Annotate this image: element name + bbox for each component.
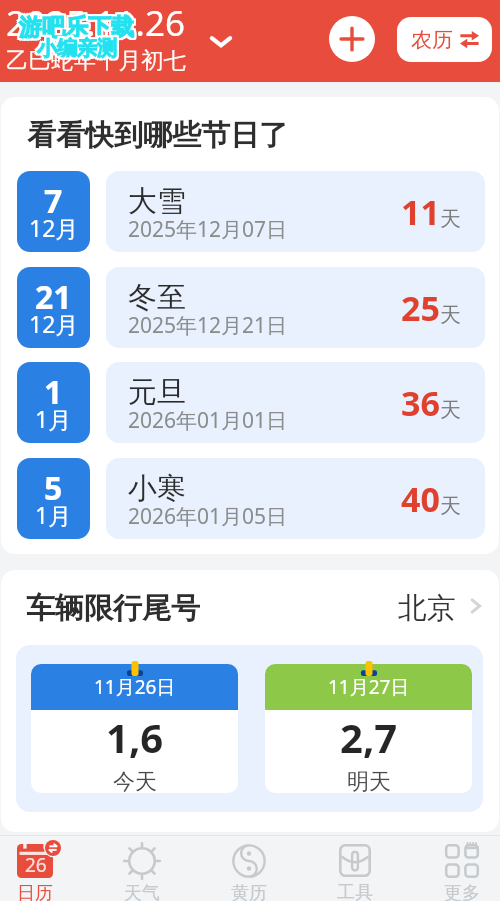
staticText: 游吧乐下载: [19, 13, 134, 42]
button[interactable]: 26: [0, 836, 88, 901]
staticText: 游吧乐下载: [21, 15, 136, 44]
staticText: 天: [440, 206, 461, 232]
staticText: 1: [44, 370, 63, 414]
staticText: 小编亲测: [35, 38, 115, 63]
staticText: 冬至: [128, 279, 186, 316]
staticText: 小编亲测: [35, 34, 115, 59]
button[interactable]: 5: [17, 458, 90, 539]
staticText: 12月: [29, 308, 79, 339]
staticText: 7: [44, 179, 63, 223]
button[interactable]: Expand date: [200, 20, 242, 62]
button[interactable]: 更多: [409, 836, 500, 901]
button[interactable]: 大雪: [106, 171, 485, 252]
staticText: 天: [440, 493, 461, 519]
staticText: 车辆限行尾号: [26, 590, 200, 622]
staticText: 2,7: [340, 710, 398, 764]
staticText: 黄历: [231, 882, 267, 901]
staticText: 21: [35, 275, 72, 319]
staticText: 5: [44, 466, 63, 510]
button[interactable]: 天气: [89, 836, 195, 901]
staticText: 游吧乐下载: [17, 11, 132, 40]
staticText: 小编亲测: [37, 38, 117, 63]
staticText: 小编亲测: [37, 34, 117, 59]
staticText: 40: [401, 476, 440, 522]
staticText: 2025年12月07日: [128, 215, 288, 244]
staticText: 1月: [35, 403, 72, 434]
staticText: 今天: [113, 768, 157, 793]
staticText: 游吧乐下载: [17, 13, 132, 42]
staticText: 2026年01月01日: [128, 406, 288, 435]
button[interactable]: Add event: [329, 16, 375, 62]
staticText: 天气: [124, 882, 160, 901]
button[interactable]: 元旦: [106, 362, 485, 443]
staticText: 11: [401, 189, 440, 235]
staticText: 元旦: [128, 374, 186, 411]
staticText: 天: [440, 302, 461, 328]
staticText: 26: [25, 852, 47, 878]
button[interactable]: 21: [17, 267, 90, 348]
staticText: 看看快到哪些节日了: [27, 117, 288, 154]
button[interactable]: 11月26日: [31, 664, 238, 793]
button[interactable]: 小寒: [106, 458, 485, 539]
button[interactable]: 7: [17, 171, 90, 252]
button[interactable]: 11月27日: [265, 664, 472, 793]
staticText: 小编亲测: [37, 36, 117, 61]
staticText: 小寒: [128, 470, 186, 507]
staticText: 游吧乐下载: [21, 11, 136, 40]
staticText: 2025年12月21日: [128, 311, 288, 340]
staticText: 大雪: [128, 183, 186, 220]
staticText: 11月27日: [328, 674, 410, 700]
staticText: 乙巳蛇年十月初七: [6, 46, 186, 74]
button[interactable]: 黄历: [196, 836, 302, 901]
staticText: 小编亲测: [39, 36, 119, 61]
staticText: 日历: [17, 882, 53, 901]
staticText: 游吧乐下载: [19, 11, 134, 40]
button[interactable]: 1: [17, 362, 90, 443]
button[interactable]: 工具: [302, 836, 408, 901]
staticText: 12月: [29, 212, 79, 243]
staticText: 25: [401, 285, 440, 331]
staticText: 小编亲测: [39, 34, 119, 59]
staticText: 1月: [35, 499, 72, 530]
staticText: 小编亲测: [35, 36, 115, 61]
staticText: 工具: [337, 881, 373, 901]
staticText: 1,6: [106, 710, 164, 764]
staticText: 11月26日: [94, 674, 176, 700]
staticText: 2025.11.26: [6, 0, 185, 47]
button[interactable]: 冬至: [106, 267, 485, 348]
staticText: 北京: [398, 590, 456, 622]
staticText: 游吧乐下载: [19, 15, 134, 44]
staticText: 农历: [411, 27, 453, 53]
staticText: 小编亲测: [39, 38, 119, 63]
staticText: 明天: [347, 768, 391, 793]
staticText: 游吧乐下载: [17, 15, 132, 44]
staticText: 2026年01月05日: [128, 502, 288, 531]
staticText: 游吧乐下载: [21, 13, 136, 42]
staticText: 更多: [444, 882, 480, 901]
staticText: 天: [440, 397, 461, 423]
button[interactable]: 车辆限行尾号: [26, 590, 483, 622]
staticText: 36: [401, 380, 440, 426]
button[interactable]: 农历: [397, 17, 492, 62]
